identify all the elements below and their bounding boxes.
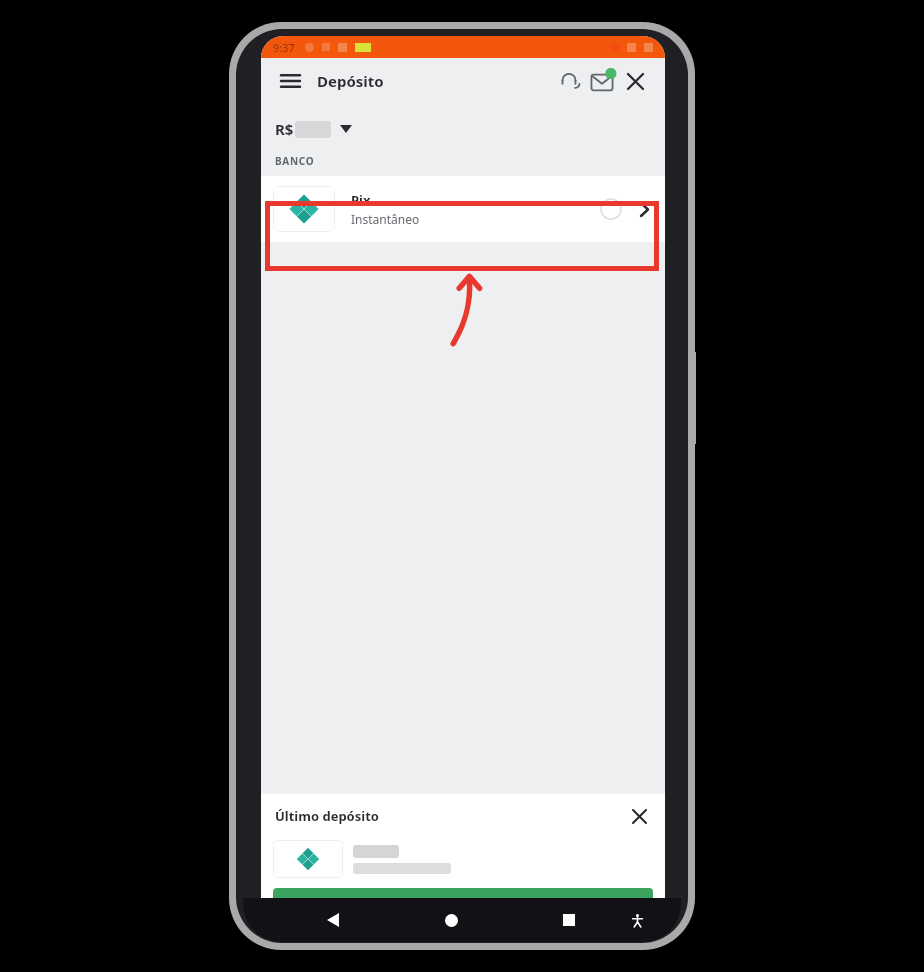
button[interactable]: Recent apps [554,905,584,935]
button[interactable]: R$ [261,104,665,154]
button[interactable]: Back [318,905,348,935]
staticText: Instantâneo [351,211,420,227]
staticText: BANCO [275,154,315,168]
staticText: Último depósito [275,807,379,825]
button[interactable]: REPETIR [273,888,653,926]
button[interactable]: Menu [275,66,305,96]
button[interactable]: Close [619,65,651,97]
staticText: R$ [275,119,294,139]
button[interactable]: Home [436,905,466,935]
staticText: REPETIR [446,898,503,916]
staticText: Depósito [317,71,384,91]
button[interactable]: Messages [585,64,619,98]
button[interactable]: Support [553,65,585,97]
button[interactable] [261,838,665,880]
button[interactable]: Accessibility [624,907,650,933]
button[interactable]: Pix [261,176,665,242]
button[interactable]: Dismiss last deposit [625,802,653,830]
staticText: 9:37 [273,40,295,55]
staticText: Pix [351,191,371,209]
